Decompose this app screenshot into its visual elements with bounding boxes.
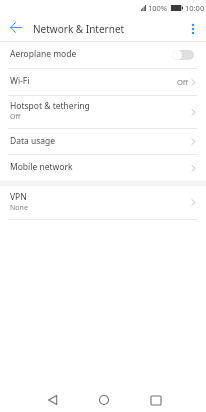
button[interactable]: More options bbox=[182, 16, 204, 41]
button[interactable]: Hotspot & tethering bbox=[0, 96, 206, 128]
button[interactable]: Data usage bbox=[0, 129, 206, 154]
staticText: Off bbox=[10, 112, 21, 122]
staticText: Hotspot & tethering bbox=[10, 100, 90, 112]
button[interactable]: Mobile network bbox=[0, 155, 206, 181]
button[interactable]: Recent apps bbox=[130, 376, 181, 412]
staticText: Off bbox=[177, 77, 189, 87]
button[interactable]: Aeroplane mode bbox=[0, 42, 206, 68]
staticText: VPN bbox=[10, 191, 27, 203]
staticText: 100% bbox=[148, 3, 168, 13]
button[interactable]: VPN bbox=[0, 186, 206, 219]
staticText: 10:00 bbox=[185, 3, 205, 13]
staticText: Aeroplane mode bbox=[10, 48, 77, 60]
button[interactable]: Back bbox=[28, 376, 77, 412]
button[interactable]: Wi-Fi bbox=[0, 69, 206, 95]
staticText: Data usage bbox=[10, 135, 56, 147]
button[interactable]: Back bbox=[0, 16, 32, 41]
staticText: Mobile network bbox=[10, 161, 73, 173]
button[interactable]: Home bbox=[77, 376, 130, 412]
staticText: Wi-Fi bbox=[10, 75, 30, 87]
staticText: Network & Internet bbox=[33, 22, 125, 36]
staticText: None bbox=[10, 203, 28, 213]
